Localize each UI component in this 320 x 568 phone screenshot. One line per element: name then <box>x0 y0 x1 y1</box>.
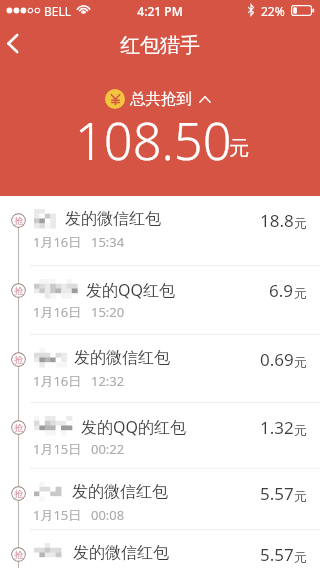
staticText: 15:34 <box>91 233 125 251</box>
staticText: 发的微信红包 <box>74 348 170 368</box>
staticText: 00:22 <box>91 440 125 458</box>
staticText: 发的微信红包 <box>72 482 168 502</box>
staticText: 抢 <box>14 215 23 226</box>
button[interactable]: 抢 <box>0 469 320 530</box>
staticText: 元 <box>294 285 307 301</box>
staticText: 红包猎手 <box>0 33 320 58</box>
button[interactable]: Back <box>0 25 32 61</box>
staticText: 00:08 <box>91 506 125 524</box>
staticText: 15:20 <box>91 303 125 321</box>
staticText: 抢 <box>14 549 23 560</box>
button[interactable]: 抢 <box>0 266 320 335</box>
staticText: 108.50 <box>75 106 232 175</box>
staticText: 0.69 <box>260 348 294 371</box>
button[interactable]: 总共抢到 <box>0 89 318 109</box>
staticText: 1月15日 <box>33 440 82 458</box>
staticText: 5.57 <box>260 482 294 505</box>
staticText: 1.32 <box>260 416 294 439</box>
staticText: 发的微信红包 <box>65 209 161 229</box>
staticText: 5.57 <box>260 543 294 566</box>
staticText: 抢 <box>14 285 23 296</box>
staticText: 6.9 <box>269 279 294 302</box>
staticText: 元 <box>294 549 307 565</box>
staticText: 元 <box>229 136 249 161</box>
staticText: 1月15日 <box>33 506 82 524</box>
staticText: 18.8 <box>260 209 294 232</box>
button[interactable]: 抢 <box>0 403 320 469</box>
staticText: 元 <box>294 422 307 438</box>
staticText: 发的微信红包 <box>73 543 169 563</box>
staticText: 元 <box>294 354 307 370</box>
staticText: 发的QQ红包 <box>86 279 175 301</box>
staticText: 1月16日 <box>33 303 82 321</box>
staticText: 总共抢到 <box>130 89 192 109</box>
staticText: 抢 <box>14 422 23 433</box>
staticText: 元 <box>294 488 307 504</box>
staticText: 4:21 PM <box>0 3 320 19</box>
staticText: BELL <box>44 3 72 19</box>
staticText: 1月16日 <box>33 372 82 390</box>
staticText: 抢 <box>14 354 23 365</box>
staticText: 1月16日 <box>33 233 82 251</box>
button[interactable]: 抢 <box>0 196 320 266</box>
staticText: 元 <box>294 215 307 231</box>
button[interactable]: 抢 <box>0 530 320 568</box>
staticText: 抢 <box>14 488 23 499</box>
staticText: 12:32 <box>91 372 125 390</box>
staticText: 发的QQ的红包 <box>81 416 186 438</box>
staticText: 22% <box>261 3 285 19</box>
button[interactable]: 抢 <box>0 335 320 403</box>
